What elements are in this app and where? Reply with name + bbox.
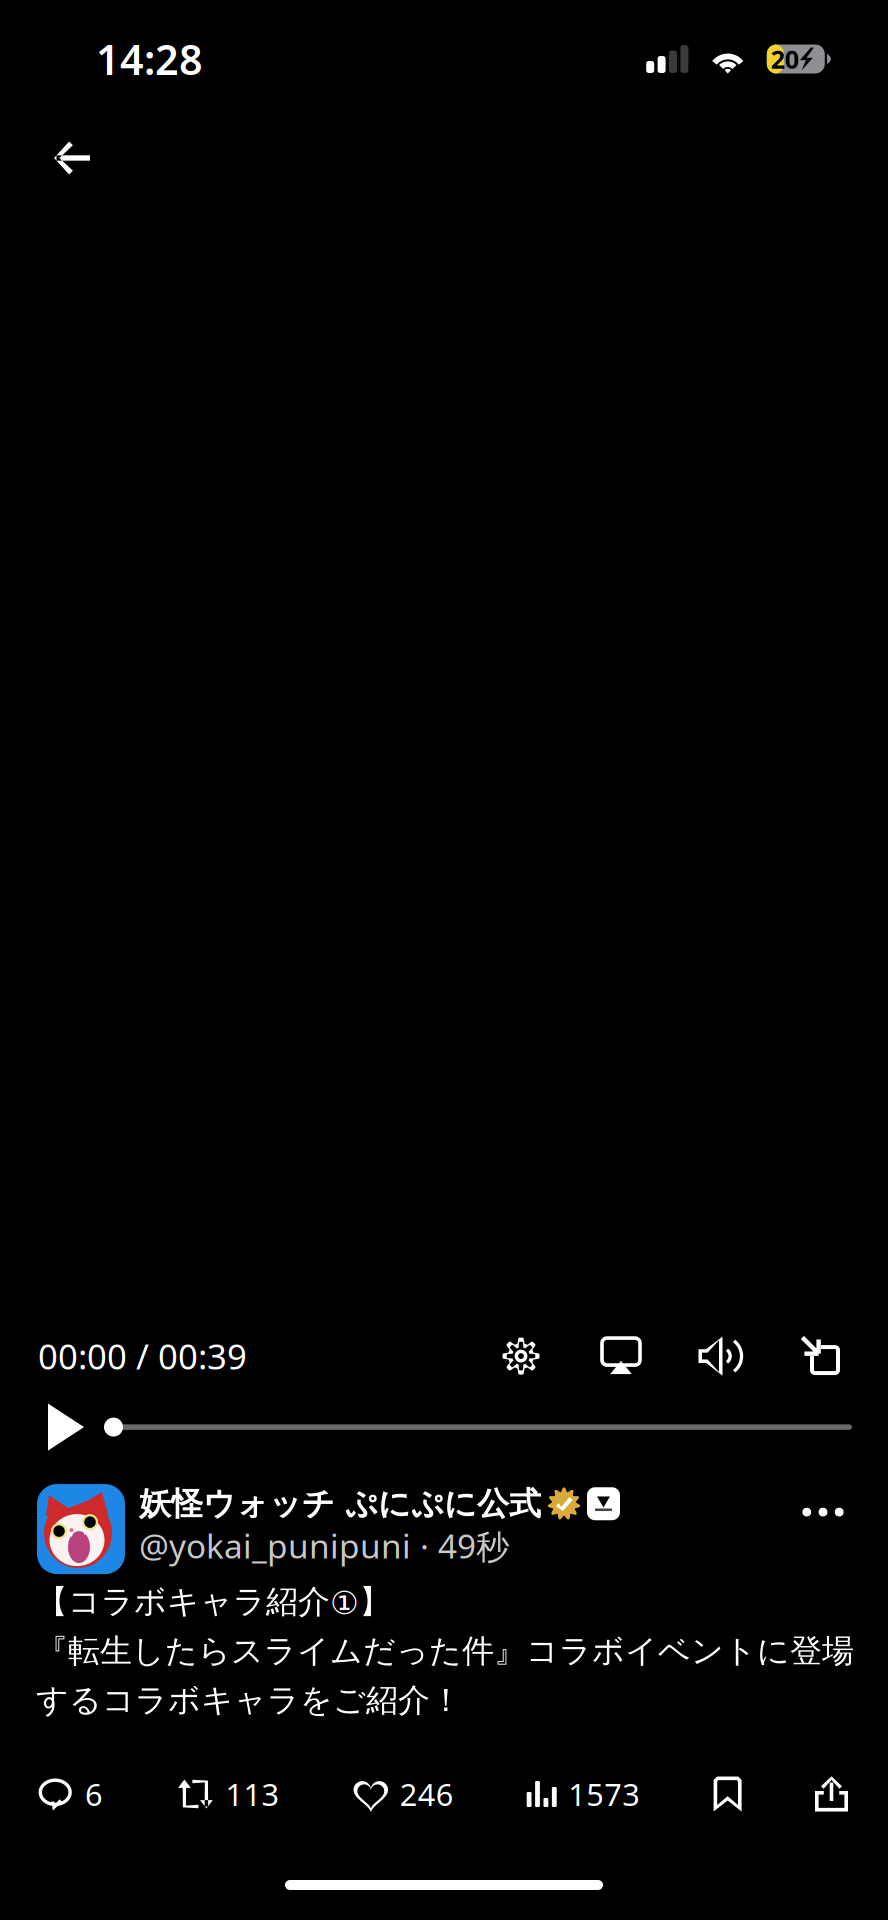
- staticText: 14:28: [96, 32, 203, 86]
- staticText: 00:00 / 00:39: [38, 1333, 247, 1379]
- staticText: 6: [85, 1774, 103, 1814]
- staticText: 妖怪ウォッチ ぷにぷに公式: [139, 1484, 541, 1523]
- staticText: 『転生したらスライムだった件』コラボイベントに登場: [36, 1631, 854, 1671]
- staticText: するコラボキャラをご紹介！: [36, 1681, 462, 1720]
- staticText: @yokai_punipuni · 49秒: [139, 1523, 509, 1568]
- button[interactable]: AirPlay: [590, 1328, 652, 1384]
- button[interactable]: Settings: [490, 1328, 552, 1384]
- button[interactable]: 1573: [527, 1774, 640, 1814]
- staticText: 20: [771, 42, 799, 76]
- staticText: 113: [225, 1774, 279, 1814]
- button[interactable]: Picture in Picture: [790, 1328, 852, 1384]
- button[interactable]: Profile picture: [37, 1484, 125, 1574]
- button[interactable]: More: [788, 1484, 858, 1540]
- staticText: 246: [400, 1774, 454, 1814]
- button[interactable]: 246: [353, 1774, 454, 1814]
- button[interactable]: Share: [815, 1776, 848, 1811]
- staticText: 1573: [568, 1774, 640, 1814]
- button[interactable]: Play: [28, 1396, 104, 1458]
- button[interactable]: Volume: [690, 1328, 752, 1384]
- staticText: 【コラボキャラ紹介①】: [36, 1582, 391, 1621]
- button[interactable]: 113: [176, 1774, 279, 1814]
- button[interactable]: 6: [38, 1774, 103, 1814]
- button[interactable]: Bookmark: [714, 1776, 742, 1811]
- button[interactable]: Back: [38, 123, 108, 193]
